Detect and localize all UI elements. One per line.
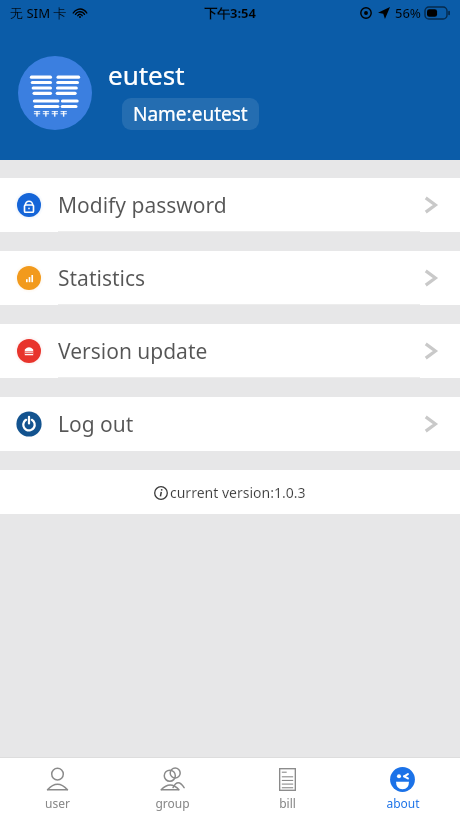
staticText: group	[155, 795, 190, 811]
button[interactable]: group	[115, 758, 230, 818]
button[interactable]: bill	[230, 758, 345, 818]
staticText: 56%	[395, 4, 421, 22]
button[interactable]: Log out	[0, 397, 460, 451]
staticText: 下午3:54	[204, 4, 256, 22]
staticText: bill	[279, 795, 296, 811]
staticText: Log out	[58, 410, 134, 439]
button[interactable]: Statistics	[0, 251, 460, 305]
button[interactable]: Modify password	[0, 178, 460, 232]
staticText: Statistics	[58, 264, 146, 293]
staticText: user	[45, 795, 70, 811]
button[interactable]: about	[345, 758, 460, 818]
staticText: Modify password	[58, 191, 227, 220]
staticText: Version update	[58, 337, 208, 366]
staticText: Name:eutest	[133, 101, 248, 127]
button[interactable]: user	[0, 758, 115, 818]
staticText: about	[386, 795, 420, 811]
staticText: current version:1.0.3	[170, 483, 306, 502]
staticText: 无 SIM 卡	[10, 4, 67, 22]
staticText: eutest	[108, 57, 185, 92]
button[interactable]: Version update	[0, 324, 460, 378]
